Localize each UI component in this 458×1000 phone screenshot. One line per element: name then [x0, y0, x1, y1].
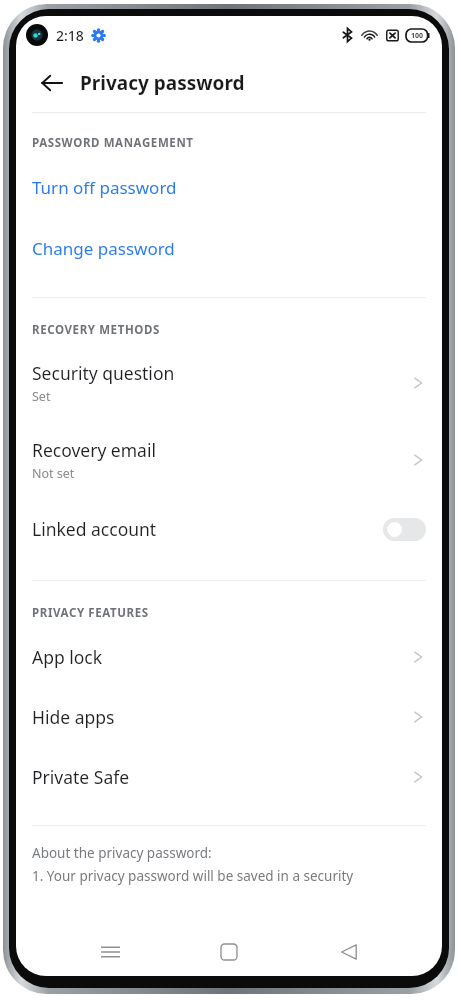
staticText: Recovery email — [32, 438, 156, 462]
staticText: Turn off password — [32, 176, 177, 199]
staticText: About the privacy password: — [32, 844, 212, 862]
staticText: Hide apps — [32, 705, 115, 729]
staticText: 2:18 — [56, 26, 84, 45]
staticText: Privacy password — [80, 70, 245, 96]
staticText: 1. Your privacy password will be saved i… — [32, 867, 354, 885]
button[interactable]: Back — [323, 928, 375, 976]
staticText: Change password — [32, 237, 175, 260]
staticText: PRIVACY FEATURES — [32, 605, 149, 621]
staticText: Set — [32, 388, 51, 405]
button[interactable]: Recovery email — [16, 421, 442, 498]
button[interactable]: Change password — [16, 218, 442, 279]
button[interactable]: Hide apps — [16, 687, 442, 747]
staticText: Security question — [32, 361, 175, 385]
staticText: Private Safe — [32, 765, 130, 789]
button[interactable]: Recent apps — [84, 928, 136, 976]
staticText: Not set — [32, 465, 75, 482]
staticText: RECOVERY METHODS — [32, 322, 160, 338]
staticText: PASSWORD MANAGEMENT — [32, 135, 194, 151]
staticText: 100 — [411, 31, 424, 41]
button[interactable]: Linked account — [16, 498, 442, 560]
button[interactable]: Turn off password — [16, 157, 442, 218]
button[interactable]: Private Safe — [16, 747, 442, 807]
button[interactable]: Back — [32, 63, 72, 103]
staticText: Linked account — [32, 517, 383, 541]
button[interactable]: Home — [203, 928, 255, 976]
button[interactable]: App lock — [16, 627, 442, 687]
staticText: App lock — [32, 645, 103, 669]
button[interactable]: Security question — [16, 344, 442, 421]
